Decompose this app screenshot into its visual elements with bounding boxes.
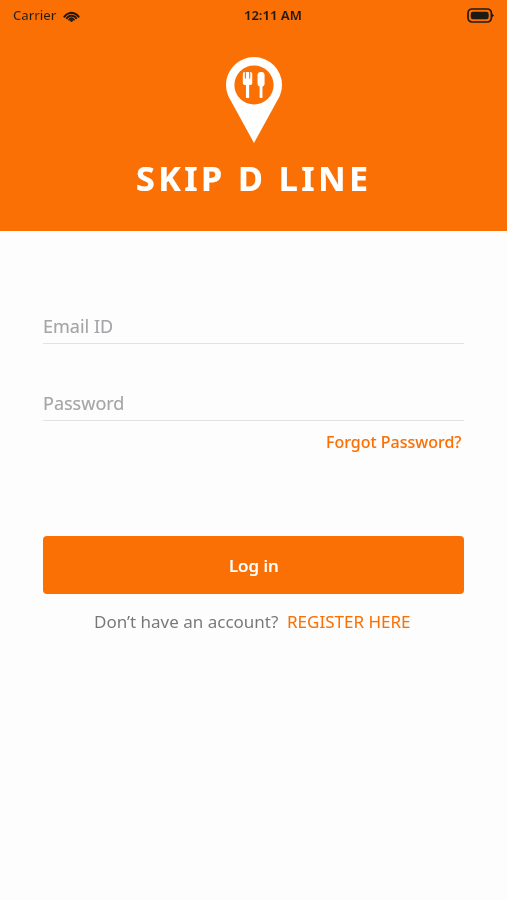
button[interactable]: Email ID — [43, 310, 464, 344]
button[interactable]: Log in — [43, 536, 464, 594]
staticText: Email ID — [43, 314, 114, 339]
staticText: Password — [43, 391, 125, 416]
button[interactable]: Forgot Password? — [324, 427, 464, 457]
staticText: Don’t have an account? — [94, 610, 279, 633]
staticText: 12:11 AM — [244, 6, 303, 24]
staticText: Carrier — [13, 6, 57, 24]
staticText: SKIP D LINE — [136, 155, 372, 201]
staticText: Forgot Password? — [326, 431, 462, 453]
staticText: Log in — [229, 554, 279, 577]
staticText: REGISTER HERE — [287, 610, 411, 633]
other: Skip D Line logo — [226, 57, 282, 143]
button[interactable]: Password — [43, 387, 464, 421]
button[interactable]: REGISTER HERE — [285, 607, 413, 636]
